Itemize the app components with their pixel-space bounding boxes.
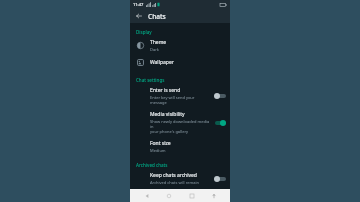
staticText: Font size <box>150 140 171 147</box>
button[interactable]: Toggle on <box>214 119 226 127</box>
button[interactable]: Toggle off <box>214 175 226 183</box>
staticText: Media visibility <box>150 111 185 118</box>
button[interactable]: Home <box>163 190 174 201</box>
staticText: Chat settings <box>136 77 165 83</box>
staticText: 11:47 <box>133 2 144 7</box>
button[interactable]: Keyboard <box>208 190 219 201</box>
staticText: Archived chats <box>136 162 168 168</box>
button[interactable]: Toggle off <box>214 92 226 100</box>
button[interactable]: Enter is send <box>130 84 230 108</box>
staticText: Wallpaper <box>150 59 174 66</box>
staticText: Enter is send <box>150 87 181 94</box>
staticText: Chats <box>148 12 166 21</box>
button[interactable]: Recent apps <box>186 190 197 201</box>
button[interactable]: Back <box>134 11 144 21</box>
staticText: Enter key will send your message <box>150 95 211 105</box>
button[interactable]: Wallpaper <box>130 55 230 70</box>
staticText: Show newly downloaded media in your phon… <box>150 119 211 134</box>
button[interactable]: Media visibility <box>130 108 230 137</box>
button[interactable]: Font size <box>130 137 230 156</box>
staticText: Medium <box>150 148 166 153</box>
staticText: Keep chats archived <box>150 172 197 179</box>
button[interactable]: Back <box>141 190 152 201</box>
button[interactable]: Theme <box>130 36 230 55</box>
staticText: Archived chats will remain archived when… <box>150 180 203 186</box>
button[interactable]: Keep chats archived <box>130 169 230 189</box>
staticText: Dark <box>150 47 159 52</box>
staticText: Theme <box>150 39 167 46</box>
staticText: Display <box>136 29 152 35</box>
